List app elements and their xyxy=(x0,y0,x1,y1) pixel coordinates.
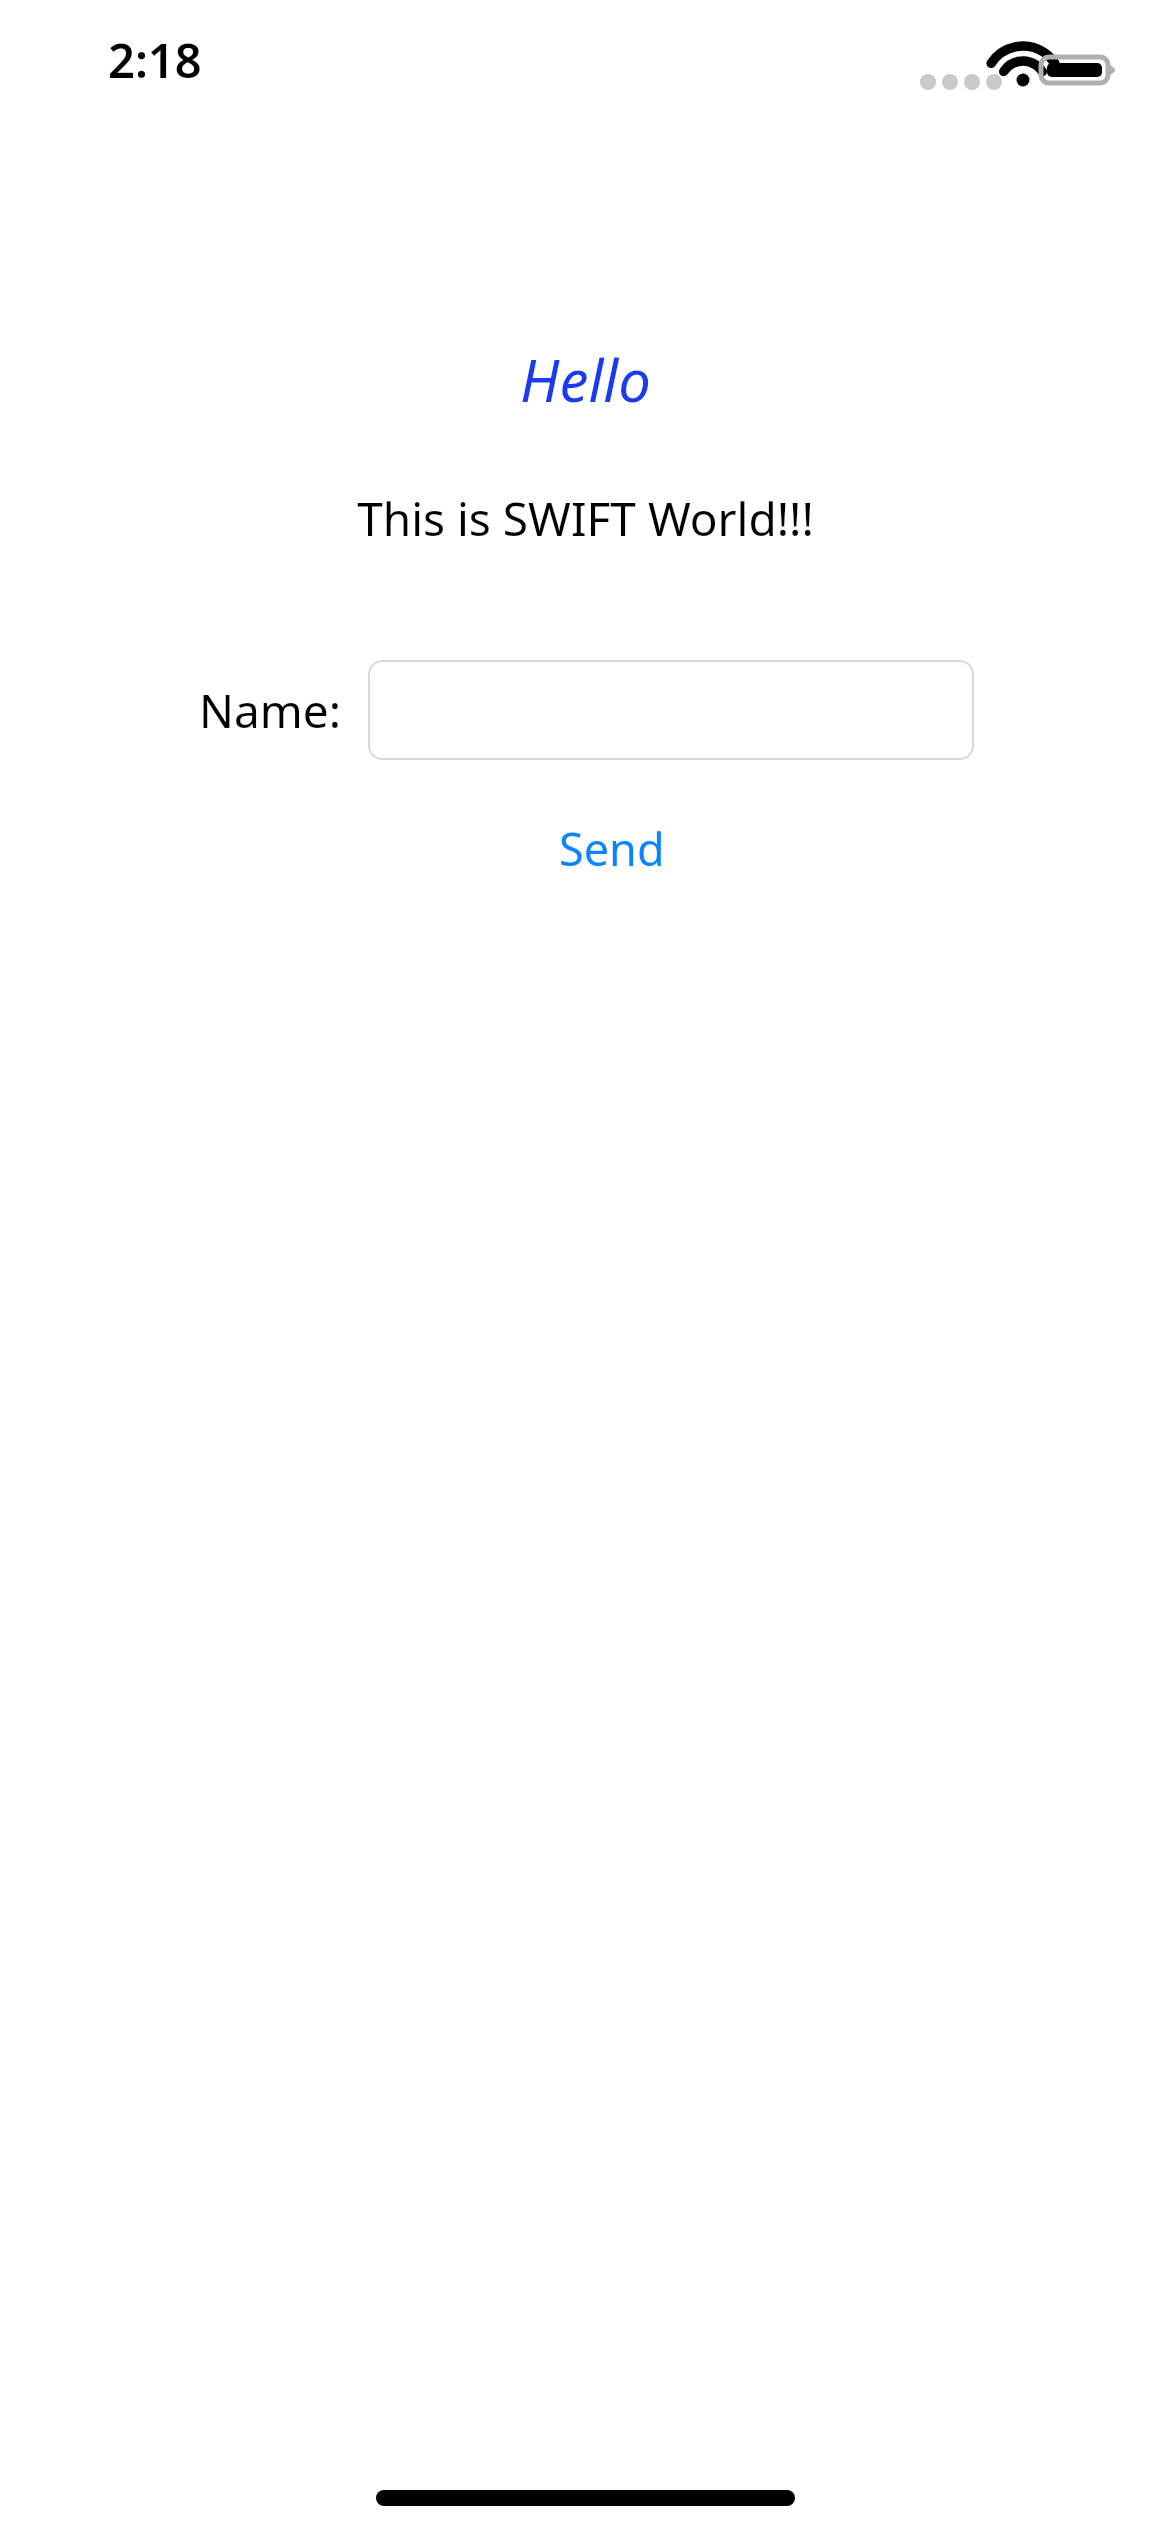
staticText: This is SWIFT World!!! xyxy=(357,487,814,550)
staticText: 2:18 xyxy=(108,28,202,92)
staticText: Hello xyxy=(520,340,651,419)
button[interactable]: Send xyxy=(541,808,683,889)
staticText: Name: xyxy=(199,679,342,742)
button[interactable]: Name text field xyxy=(368,660,974,760)
staticText: Send xyxy=(559,818,665,879)
